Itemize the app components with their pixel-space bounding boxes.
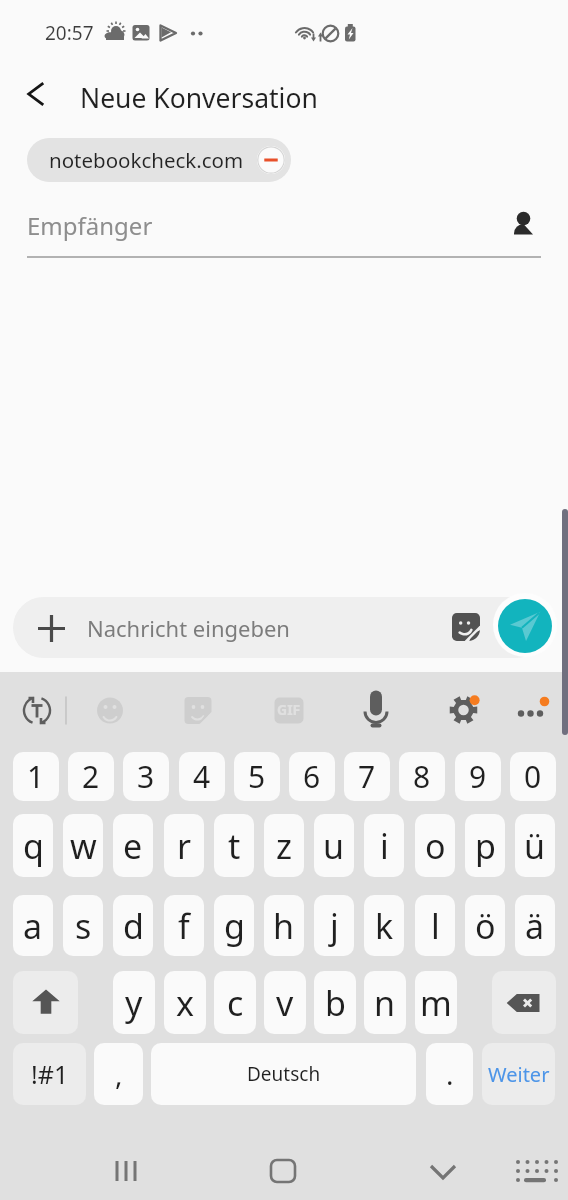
staticText: ä xyxy=(525,903,545,949)
staticText: 9 xyxy=(469,756,487,797)
staticText: , xyxy=(115,1055,123,1093)
button[interactable]: r xyxy=(164,814,204,877)
button[interactable]: 4 xyxy=(179,752,225,801)
button[interactable]: Contacts xyxy=(498,198,548,248)
staticText: q xyxy=(23,823,44,869)
button[interactable]: s xyxy=(63,895,103,956)
button[interactable]: Add attachment xyxy=(13,597,546,658)
staticText: . xyxy=(446,1055,454,1093)
button[interactable]: v xyxy=(264,971,306,1034)
button[interactable]: notebookcheck.com xyxy=(27,138,291,182)
staticText: 20:57 xyxy=(45,20,94,46)
staticText: l xyxy=(431,903,440,949)
button[interactable]: y xyxy=(113,971,155,1034)
staticText: Deutsch xyxy=(247,1061,321,1087)
button[interactable]: . xyxy=(426,1043,473,1105)
button[interactable]: e xyxy=(113,814,153,877)
staticText: r xyxy=(177,823,192,869)
button[interactable]: z xyxy=(264,814,304,877)
staticText: i xyxy=(380,823,389,869)
button[interactable]: j xyxy=(314,895,354,956)
button[interactable]: x xyxy=(164,971,206,1034)
button[interactable]: l xyxy=(415,895,455,956)
staticText: p xyxy=(475,823,496,869)
staticText: j xyxy=(330,903,339,949)
staticText: 7 xyxy=(358,756,376,797)
button[interactable]: t xyxy=(214,814,254,877)
staticText: v xyxy=(276,980,294,1026)
staticText: !#1 xyxy=(31,1057,69,1091)
button[interactable]: g xyxy=(214,895,254,956)
staticText: Nachricht eingeben xyxy=(87,613,290,643)
button[interactable]: k xyxy=(364,895,404,956)
button[interactable]: Shift xyxy=(13,971,78,1034)
button[interactable]: c xyxy=(214,971,256,1034)
staticText: e xyxy=(123,823,143,869)
staticText: ö xyxy=(475,903,496,949)
staticText: 5 xyxy=(248,756,266,797)
staticText: 0 xyxy=(524,756,542,797)
staticText: Empfänger xyxy=(27,209,153,242)
button[interactable]: Backspace xyxy=(492,971,556,1034)
button[interactable]: f xyxy=(164,895,204,956)
staticText: 4 xyxy=(193,756,211,797)
button[interactable]: !#1 xyxy=(13,1043,86,1105)
button[interactable]: ü xyxy=(515,814,555,877)
staticText: b xyxy=(325,980,346,1026)
button[interactable]: Stickers xyxy=(443,604,489,650)
staticText: Neue Konversation xyxy=(80,80,318,116)
button[interactable]: w xyxy=(63,814,103,877)
staticText: u xyxy=(323,823,345,869)
button[interactable]: ö xyxy=(465,895,505,956)
button[interactable]: 2 xyxy=(68,752,114,801)
staticText: n xyxy=(374,980,396,1026)
button[interactable]: 8 xyxy=(399,752,445,801)
staticText: ü xyxy=(524,823,546,869)
button[interactable]: Weiter xyxy=(482,1043,555,1105)
staticText: w xyxy=(70,823,97,869)
staticText: s xyxy=(75,903,92,949)
button[interactable]: 5 xyxy=(234,752,280,801)
staticText: 8 xyxy=(413,756,431,797)
button[interactable]: 3 xyxy=(123,752,169,801)
button[interactable]: Add attachment xyxy=(26,603,76,653)
button[interactable]: q xyxy=(13,814,53,877)
button[interactable]: i xyxy=(364,814,404,877)
button[interactable]: Back xyxy=(11,69,61,119)
staticText: k xyxy=(375,903,394,949)
button[interactable]: 7 xyxy=(344,752,390,801)
button[interactable]: Deutsch xyxy=(151,1043,416,1105)
button[interactable]: b xyxy=(314,971,356,1034)
staticText: z xyxy=(276,823,292,869)
staticText: g xyxy=(224,903,245,949)
button[interactable]: m xyxy=(415,971,457,1034)
staticText: f xyxy=(178,903,190,949)
button[interactable]: 0 xyxy=(510,752,556,801)
button[interactable]: 9 xyxy=(455,752,501,801)
staticText: h xyxy=(273,903,295,949)
staticText: d xyxy=(123,903,144,949)
button[interactable]: o xyxy=(415,814,455,877)
button[interactable]: d xyxy=(113,895,153,956)
button[interactable]: u xyxy=(314,814,354,877)
staticText: y xyxy=(125,980,143,1026)
staticText: Weiter xyxy=(488,1061,550,1088)
button[interactable]: 1 xyxy=(13,752,59,801)
button[interactable]: p xyxy=(465,814,505,877)
staticText: 2 xyxy=(82,756,100,797)
button[interactable]: h xyxy=(264,895,304,956)
staticText: t xyxy=(228,823,241,869)
button[interactable]: Send xyxy=(498,599,552,653)
staticText: notebookcheck.com xyxy=(49,146,244,174)
button[interactable]: n xyxy=(364,971,406,1034)
button[interactable]: Remove recipient xyxy=(257,146,285,174)
staticText: o xyxy=(425,823,446,869)
button[interactable]: a xyxy=(13,895,53,956)
staticText: x xyxy=(176,980,194,1026)
staticText: 3 xyxy=(137,756,155,797)
staticText: 1 xyxy=(27,756,45,797)
button[interactable]: ä xyxy=(515,895,555,956)
button[interactable]: 6 xyxy=(289,752,335,801)
button[interactable]: , xyxy=(94,1043,143,1105)
staticText: a xyxy=(23,903,43,949)
